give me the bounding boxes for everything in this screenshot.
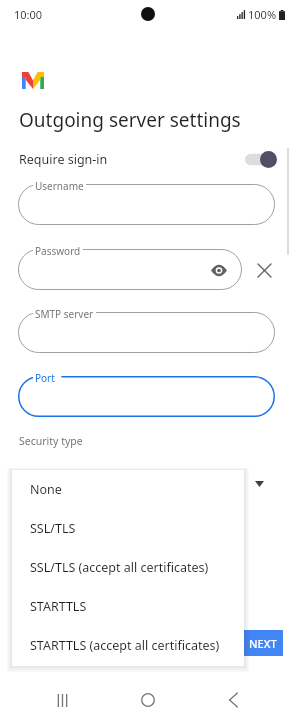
button[interactable]: SSL/TLS <box>12 509 244 548</box>
staticText: None <box>30 481 62 498</box>
staticText: 10:00 <box>14 7 43 22</box>
button[interactable]: NEXT <box>243 630 283 656</box>
button[interactable]: Recents <box>39 678 85 722</box>
button[interactable]: Port <box>18 376 275 417</box>
button[interactable]: Show password <box>208 259 230 281</box>
staticText: SSL/TLS (accept all certificates) <box>30 559 209 576</box>
button[interactable]: None <box>12 470 244 509</box>
button[interactable]: STARTTLS (accept all certificates) <box>12 626 244 665</box>
button[interactable]: Password <box>18 249 242 290</box>
button[interactable]: SMTP server <box>18 312 275 353</box>
staticText: STARTTLS <box>30 598 87 615</box>
button[interactable]: Open security type list <box>249 474 269 494</box>
staticText: 100% <box>248 7 277 22</box>
button[interactable]: Home <box>125 678 171 722</box>
staticText: Port <box>35 371 55 385</box>
button[interactable]: STARTTLS <box>12 587 244 626</box>
staticText: NEXT <box>249 636 277 651</box>
staticText: SMTP server <box>35 307 94 321</box>
staticText: Security type <box>19 434 83 448</box>
staticText: Username <box>35 179 84 193</box>
button[interactable]: SSL/TLS (accept all certificates) <box>12 548 244 587</box>
staticText: Password <box>35 244 81 258</box>
staticText: STARTTLS (accept all certificates) <box>30 637 220 654</box>
staticText: SSL/TLS <box>30 520 76 537</box>
button[interactable]: Require sign-in <box>0 149 295 170</box>
staticText: Outgoing server settings <box>19 107 241 133</box>
button[interactable]: Clear password <box>251 257 277 283</box>
button[interactable]: Back <box>210 678 256 722</box>
button[interactable]: Username <box>18 184 275 225</box>
staticText: Require sign-in <box>19 151 108 168</box>
